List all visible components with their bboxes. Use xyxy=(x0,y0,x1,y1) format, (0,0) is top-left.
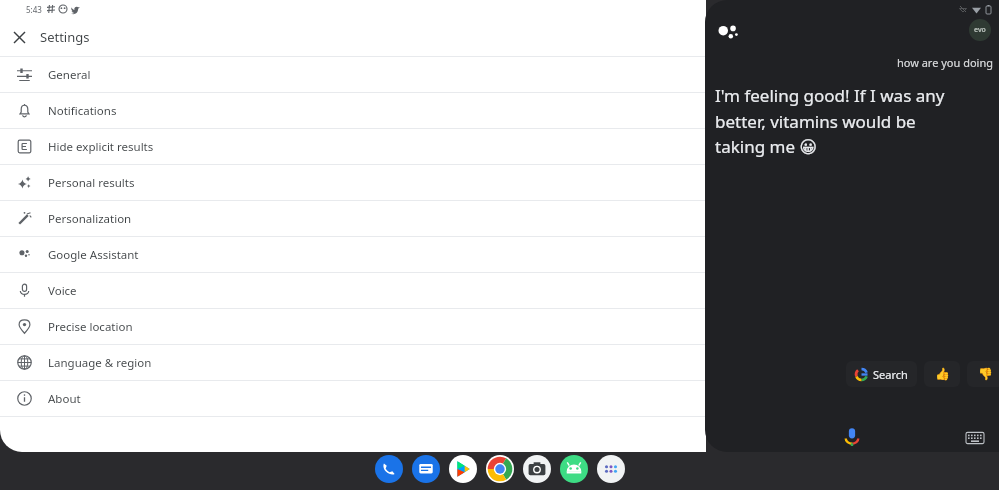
button[interactable]: Thumbs down xyxy=(967,361,999,387)
button[interactable]: Close xyxy=(8,26,30,48)
staticText: Personalization xyxy=(48,211,132,227)
button[interactable]: Google Assistant xyxy=(0,237,706,272)
staticText: General xyxy=(48,67,91,83)
staticText: 👍 xyxy=(935,367,950,381)
button[interactable]: Messages xyxy=(409,452,443,486)
staticText: how are you doing xyxy=(705,55,993,70)
button[interactable]: Phone xyxy=(372,452,406,486)
button[interactable]: Close xyxy=(0,18,706,56)
staticText: I'm feeling good! If I was any better, v… xyxy=(715,84,945,158)
button[interactable]: Account xyxy=(969,19,991,41)
staticText: evo xyxy=(974,25,986,35)
button[interactable]: All apps xyxy=(594,452,628,486)
button[interactable]: About xyxy=(0,381,706,416)
staticText: Precise location xyxy=(48,319,133,335)
staticText: Notifications xyxy=(48,103,117,119)
button[interactable]: Keyboard xyxy=(965,428,985,448)
button[interactable]: Personal results xyxy=(0,165,706,200)
staticText: Search xyxy=(873,367,908,382)
staticText: Personal results xyxy=(48,175,135,191)
button[interactable]: Precise location xyxy=(0,309,706,344)
button[interactable]: Thumbs up xyxy=(924,361,960,387)
staticText: 👎 xyxy=(978,367,993,381)
staticText: 5:43 xyxy=(26,4,42,15)
button[interactable]: Search xyxy=(846,361,917,387)
staticText: About xyxy=(48,391,81,407)
button[interactable]: Camera xyxy=(520,452,554,486)
staticText: Google Assistant xyxy=(48,247,139,263)
button[interactable]: Hide explicit results xyxy=(0,129,706,164)
button[interactable]: Personalization xyxy=(0,201,706,236)
button[interactable]: Chrome xyxy=(483,452,517,486)
button[interactable]: Language & region xyxy=(0,345,706,380)
button[interactable]: Play Store xyxy=(446,452,480,486)
staticText: Hide explicit results xyxy=(48,139,154,155)
button[interactable]: Voice xyxy=(0,273,706,308)
button[interactable]: Google Assistant xyxy=(714,20,742,48)
button[interactable]: Notifications xyxy=(0,93,706,128)
staticText: Voice xyxy=(48,283,77,299)
button[interactable]: Voice input xyxy=(840,424,864,448)
button[interactable]: Android xyxy=(557,452,591,486)
staticText: Settings xyxy=(40,28,90,46)
button[interactable]: General xyxy=(0,57,706,92)
staticText: Language & region xyxy=(48,355,152,371)
